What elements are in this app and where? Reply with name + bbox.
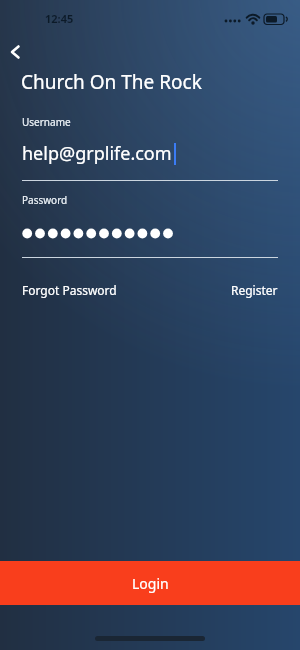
button[interactable]: Register	[231, 282, 278, 298]
staticText: 12:45	[45, 11, 74, 26]
staticText: Login	[132, 574, 169, 593]
staticText: Register	[231, 282, 278, 298]
button[interactable]: Login	[0, 561, 300, 605]
staticText: Church On The Rock	[21, 69, 202, 95]
button[interactable]	[2, 38, 32, 66]
button[interactable]: Password	[0, 190, 300, 260]
staticText: Forgot Password	[22, 282, 117, 298]
staticText: Username	[22, 115, 71, 129]
staticText: Password	[22, 193, 68, 207]
button[interactable]: Forgot Password	[22, 282, 117, 298]
staticText: help@grplife.com	[22, 141, 172, 166]
button[interactable]: Username	[0, 112, 300, 184]
